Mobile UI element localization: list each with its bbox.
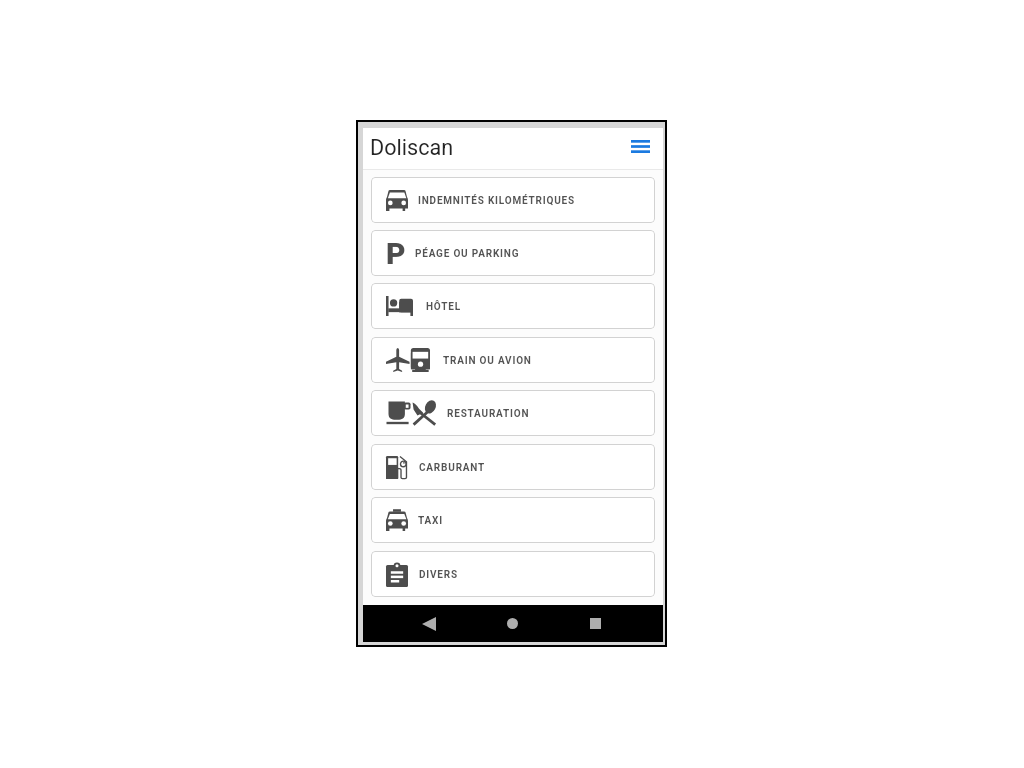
button[interactable]: INDEMNITÉS KILOMÉTRIQUES [371, 177, 655, 223]
button[interactable]: TAXI [371, 497, 655, 543]
button[interactable]: DIVERS [371, 551, 655, 597]
button[interactable]: Back [409, 605, 449, 642]
staticText: PÉAGE OU PARKING [415, 248, 520, 260]
staticText: RESTAURATION [447, 408, 530, 420]
button[interactable]: RESTAURATION [371, 390, 655, 436]
staticText: INDEMNITÉS KILOMÉTRIQUES [418, 195, 575, 207]
staticText: P [386, 236, 403, 271]
button[interactable]: Home [492, 605, 532, 642]
button[interactable]: CARBURANT [371, 444, 655, 490]
staticText: Doliscan [370, 135, 454, 160]
button[interactable]: Recent apps [575, 605, 615, 642]
staticText: CARBURANT [419, 462, 486, 474]
button[interactable]: HÔTEL [371, 283, 655, 329]
staticText: TRAIN OU AVION [443, 355, 532, 367]
staticText: TAXI [418, 515, 443, 527]
button[interactable]: TRAIN OU AVION [371, 337, 655, 383]
button[interactable]: Menu [627, 133, 653, 159]
button[interactable]: P [371, 230, 655, 276]
staticText: HÔTEL [426, 301, 461, 313]
staticText: DIVERS [419, 569, 458, 581]
